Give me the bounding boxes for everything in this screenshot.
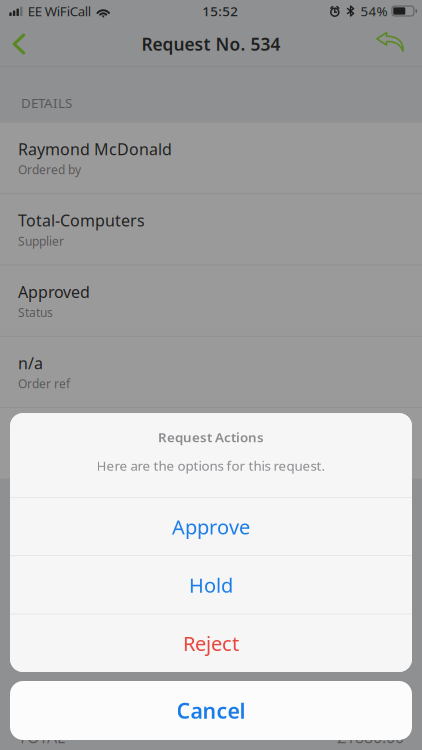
staticText: 54%	[360, 2, 387, 20]
staticText: 15:52	[202, 2, 238, 20]
staticText: Cancel	[176, 696, 245, 725]
staticText: DETAILS	[21, 94, 72, 112]
button[interactable]: Cancel	[10, 681, 412, 740]
button[interactable]: Approve	[10, 498, 412, 555]
button[interactable]: Hold	[10, 556, 412, 614]
staticText: Reject	[183, 630, 239, 657]
staticText: Supplier	[18, 233, 64, 249]
staticText: Here are the options for this request.	[96, 457, 325, 474]
staticText: Raymond McDonald	[18, 138, 172, 160]
staticText: Approve	[172, 513, 250, 540]
staticText: Request Actions	[158, 428, 264, 446]
button[interactable]: Back	[0, 22, 38, 66]
staticText: Ordered by	[18, 162, 81, 178]
button[interactable]: Reject	[10, 614, 412, 672]
button[interactable]: Reply	[368, 22, 412, 66]
staticText: Hold	[189, 572, 233, 598]
staticText: Total-Computers	[18, 210, 145, 231]
staticText: Order ref	[18, 376, 70, 391]
staticText: Status	[18, 304, 53, 320]
staticText: Approved	[18, 281, 90, 302]
staticText: EE WiFiCall	[28, 2, 91, 20]
staticText: TOTAL	[18, 726, 65, 748]
staticText: Request No. 534	[141, 32, 280, 55]
staticText: £1880.00	[337, 726, 404, 748]
staticText: n/a	[18, 352, 43, 374]
